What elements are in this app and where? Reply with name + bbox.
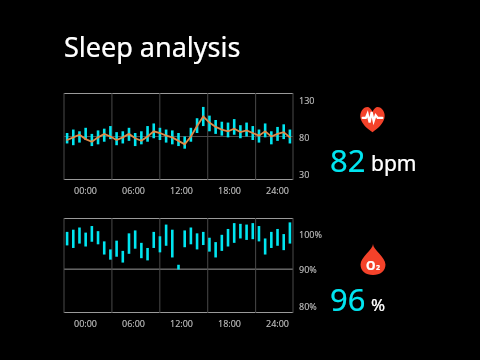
staticText: 24:00: [266, 317, 290, 329]
staticText: 12:00: [170, 317, 194, 329]
button[interactable]: Blood oxygen: [330, 244, 450, 320]
staticText: 90%: [299, 263, 317, 275]
staticText: 96: [330, 278, 366, 320]
staticText: 130: [299, 94, 315, 106]
staticText: 00:00: [74, 184, 98, 196]
staticText: 18:00: [218, 184, 242, 196]
staticText: 2: [376, 263, 381, 273]
button[interactable]: [64, 93, 293, 180]
staticText: %: [371, 293, 386, 316]
staticText: 06:00: [122, 184, 146, 196]
staticText: O: [366, 257, 376, 273]
staticText: 80%: [299, 300, 317, 312]
button[interactable]: [64, 218, 293, 313]
other: Heart rate: [358, 106, 387, 133]
staticText: Sleep analysis: [64, 28, 241, 65]
staticText: 06:00: [122, 317, 146, 329]
staticText: 24:00: [266, 184, 290, 196]
staticText: 00:00: [74, 317, 98, 329]
button[interactable]: Heart rate: [330, 106, 450, 181]
staticText: 12:00: [170, 184, 194, 196]
staticText: bpm: [371, 149, 417, 178]
staticText: 80: [299, 131, 310, 143]
other: Blood oxygen: [360, 244, 386, 275]
staticText: 100%: [299, 228, 322, 240]
staticText: 18:00: [218, 317, 242, 329]
staticText: 30: [299, 168, 310, 180]
staticText: 82: [330, 139, 366, 181]
